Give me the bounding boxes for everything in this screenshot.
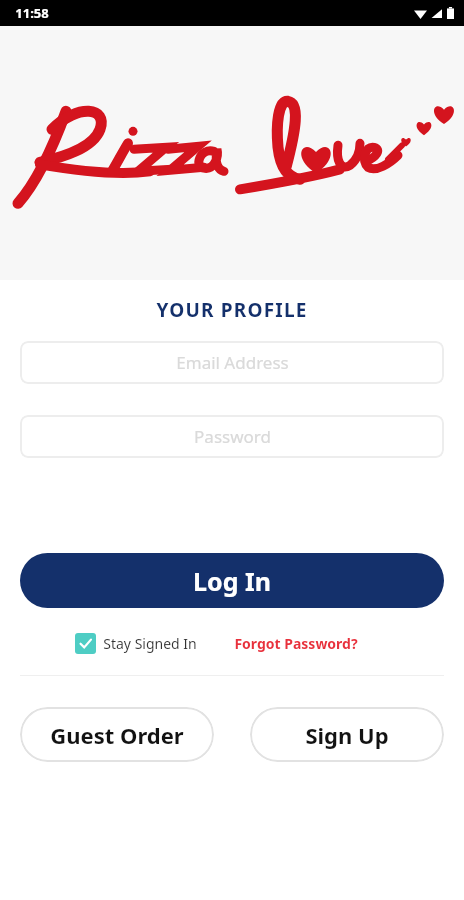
staticText: Guest Order: [50, 720, 184, 750]
button[interactable]: Guest Order: [20, 707, 214, 762]
button[interactable]: Sign Up: [250, 707, 444, 762]
button[interactable]: Stay Signed In: [75, 633, 197, 654]
button[interactable]: Log In: [20, 553, 444, 608]
staticText: Password: [194, 425, 271, 448]
staticText: Sign Up: [305, 720, 389, 750]
staticText: Log In: [193, 564, 271, 598]
staticText: 11:58: [15, 4, 49, 22]
button[interactable]: Password: [20, 415, 444, 458]
button[interactable]: Email Address: [20, 341, 444, 384]
staticText: Forgot Password?: [234, 634, 358, 653]
staticText: Stay Signed In: [103, 634, 197, 653]
button[interactable]: Forgot Password?: [234, 634, 358, 653]
staticText: YOUR PROFILE: [156, 297, 308, 323]
staticText: Email Address: [176, 351, 289, 374]
